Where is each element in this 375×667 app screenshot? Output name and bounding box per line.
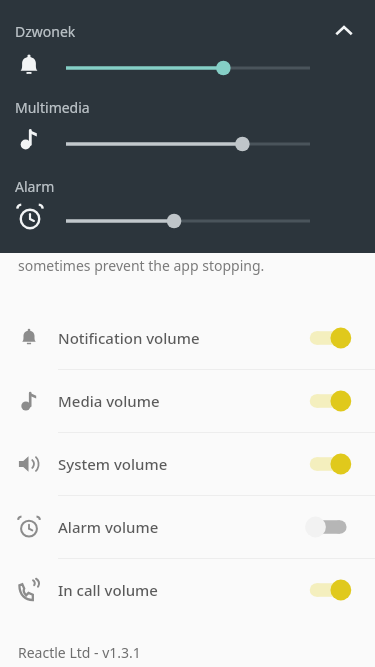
button[interactable]: System volume — [0, 433, 375, 495]
button[interactable]: Volume slider — [62, 57, 314, 79]
staticText: In call volume — [58, 580, 307, 600]
button[interactable]: Media volume — [0, 370, 375, 432]
button[interactable]: In call volume — [0, 559, 375, 621]
staticText: sometimes prevent the app stopping. — [18, 256, 265, 275]
staticText: Media volume — [58, 391, 307, 411]
button[interactable]: Notification volume — [0, 307, 375, 369]
staticText: System volume — [58, 454, 307, 474]
button[interactable]: Volume slider — [62, 133, 314, 155]
staticText: Dzwonek — [15, 22, 76, 41]
staticText: Alarm — [15, 177, 55, 196]
button[interactable]: Collapse — [325, 12, 363, 50]
button[interactable]: Alarm volume — [0, 496, 375, 558]
staticText: Notification volume — [58, 328, 307, 348]
staticText: Multimedia — [15, 98, 90, 117]
button[interactable]: Volume slider — [62, 210, 314, 232]
staticText: Reactle Ltd - v1.3.1 — [18, 643, 141, 662]
staticText: Alarm volume — [58, 517, 307, 537]
